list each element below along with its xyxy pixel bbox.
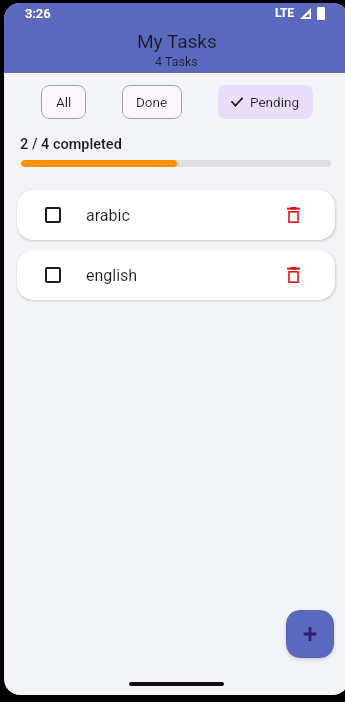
staticText: 3:26 <box>25 6 51 21</box>
button[interactable]: Toggle english <box>45 267 61 283</box>
button[interactable]: All <box>41 85 86 119</box>
button[interactable]: Pending <box>218 85 313 119</box>
button[interactable]: Add task <box>286 610 334 658</box>
staticText: All <box>56 94 72 110</box>
staticText: 2 / 4 completed <box>20 136 122 153</box>
staticText: Done <box>136 94 168 110</box>
staticText: LTE <box>275 6 295 20</box>
staticText: english <box>86 266 138 285</box>
button[interactable]: Toggle arabic <box>17 190 335 240</box>
staticText: 4 Tasks <box>155 54 198 69</box>
staticText: arabic <box>86 206 130 225</box>
button[interactable]: Delete english <box>277 259 309 291</box>
button[interactable]: Toggle arabic <box>45 207 61 223</box>
button[interactable]: Toggle english <box>17 250 335 300</box>
button[interactable]: Done <box>122 85 182 119</box>
button[interactable]: Delete arabic <box>277 199 309 231</box>
staticText: Pending <box>250 94 299 110</box>
staticText: My Tasks <box>137 30 217 52</box>
